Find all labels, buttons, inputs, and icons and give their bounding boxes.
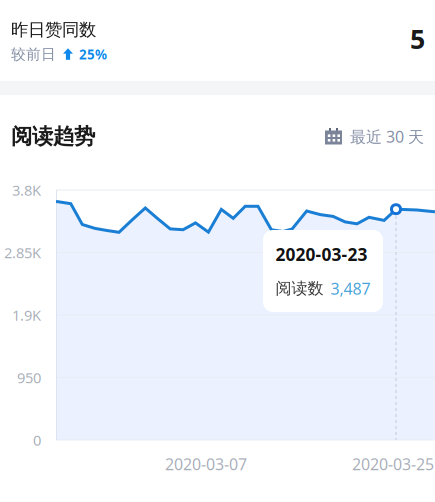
staticText: 较前日 <box>11 45 56 63</box>
staticText: 2020-03-23 <box>275 243 367 266</box>
staticText: 3.8K <box>12 180 41 200</box>
staticText: 2020-03-07 <box>165 453 247 475</box>
staticText: 25% <box>79 45 107 63</box>
staticText: 950 <box>17 368 41 387</box>
staticText: 昨日赞同数 <box>11 19 96 40</box>
staticText: 阅读数 <box>275 279 323 298</box>
button[interactable]: 最近 30 天 <box>325 126 424 147</box>
staticText: 5 <box>410 21 425 56</box>
staticText: 1.9K <box>12 305 41 325</box>
staticText: 最近 30 天 <box>350 126 424 147</box>
staticText: 阅读趋势 <box>11 123 95 150</box>
staticText: 2.85K <box>4 243 41 262</box>
staticText: 0 <box>33 430 41 450</box>
staticText: 3,487 <box>330 278 370 299</box>
staticText: 2020-03-25 <box>352 453 434 475</box>
